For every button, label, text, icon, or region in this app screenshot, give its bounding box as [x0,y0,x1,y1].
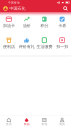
staticText: 加油卡 [3,23,15,28]
button[interactable]: 评价有礼 [18,37,36,49]
staticText: 卡券 [58,23,66,28]
staticText: 我的 [59,122,65,126]
button[interactable]: 积分 [35,16,53,28]
staticText: 油价 [23,23,31,28]
button[interactable]: 扫一扫 [53,37,71,49]
button[interactable]: Search [61,4,69,12]
button[interactable]: 油价 [18,16,36,28]
staticText: 发现 [41,122,47,126]
staticText: 首页 [6,122,12,126]
staticText: 中国移动 [8,1,20,4]
staticText: 便利店 [3,44,15,49]
staticText: 加油 [24,122,30,126]
button[interactable]: 我的 [53,118,71,126]
button[interactable]: 首页 [0,118,18,126]
button[interactable]: 生活缴费 [35,37,53,49]
staticText: 扫一扫 [56,44,68,49]
staticText: 中国石化 [10,6,26,11]
staticText: 生活缴费 [36,44,52,49]
button[interactable]: 加油卡 [0,16,18,28]
staticText: 评价有礼 [19,44,35,49]
button[interactable]: 加油 [18,118,36,126]
staticText: 积分 [40,23,48,28]
button[interactable]: 便利店 [0,37,18,49]
button[interactable]: 发现 [35,118,53,126]
button[interactable]: 卡券 [53,16,71,28]
